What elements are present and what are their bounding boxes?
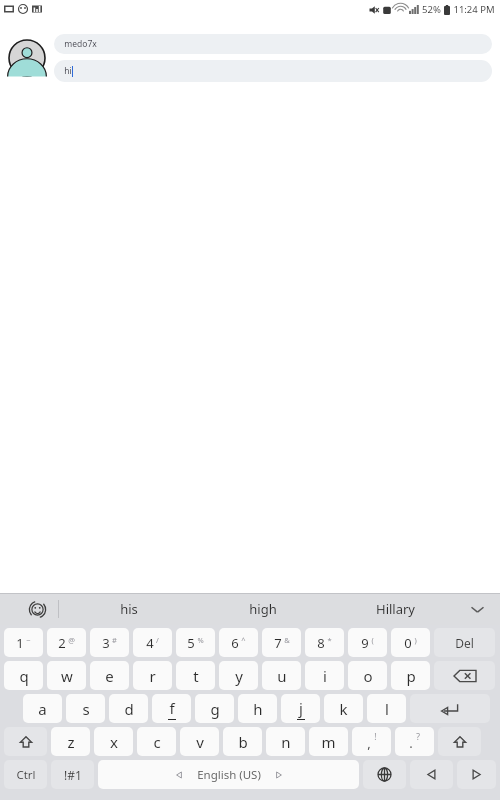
button[interactable]: his <box>62 593 196 625</box>
button[interactable]: 0 <box>391 628 430 657</box>
staticText: e <box>105 666 114 686</box>
staticText: ! <box>374 731 377 743</box>
staticText: l <box>385 699 389 719</box>
button[interactable]: z <box>51 727 90 756</box>
staticText: p <box>406 666 416 686</box>
button[interactable]: , <box>352 727 391 756</box>
button[interactable]: 5 <box>176 628 215 657</box>
button[interactable]: 9 <box>348 628 387 657</box>
button[interactable]: Hide keyboard <box>462 594 492 624</box>
staticText: i <box>323 666 327 686</box>
staticText: h <box>253 699 263 719</box>
button[interactable]: w <box>47 661 86 690</box>
button[interactable]: 1 <box>4 628 43 657</box>
button[interactable]: Change language <box>363 760 406 789</box>
staticText: 3 <box>102 634 110 652</box>
staticText: 2 <box>58 634 66 652</box>
staticText: b <box>238 732 248 752</box>
button[interactable]: hi <box>54 60 492 82</box>
staticText: x <box>110 732 118 752</box>
staticText: 11:24 PM <box>453 3 495 16</box>
button[interactable]: Hillary <box>329 593 462 625</box>
staticText: f <box>169 698 175 718</box>
staticText: z <box>67 732 75 752</box>
button[interactable]: Emoji <box>22 594 52 624</box>
button[interactable]: 2 <box>47 628 86 657</box>
button[interactable]: Shift <box>4 727 47 756</box>
staticText: u <box>277 666 287 686</box>
staticText: hi <box>64 65 72 77</box>
button[interactable]: f <box>152 694 191 723</box>
staticText: c <box>153 732 161 752</box>
button[interactable]: !#1 <box>51 760 94 789</box>
staticText: , <box>367 734 371 752</box>
button[interactable]: Ctrl <box>4 760 47 789</box>
staticText: g <box>210 699 220 719</box>
button[interactable]: medo7x <box>54 34 492 54</box>
button[interactable]: u <box>262 661 301 690</box>
button[interactable]: x <box>94 727 133 756</box>
staticText: 0 <box>404 634 412 652</box>
button[interactable]: c <box>137 727 176 756</box>
staticText: r <box>149 666 156 686</box>
button[interactable]: v <box>180 727 219 756</box>
button[interactable]: j <box>281 694 320 723</box>
button[interactable]: b <box>223 727 262 756</box>
staticText: ? <box>416 731 420 743</box>
staticText: j <box>299 698 303 718</box>
staticText: a <box>38 699 47 719</box>
button[interactable]: i <box>305 661 344 690</box>
button[interactable]: k <box>324 694 363 723</box>
button[interactable]: 3 <box>90 628 129 657</box>
staticText: Del <box>455 635 474 651</box>
button[interactable]: high <box>196 593 329 625</box>
button[interactable]: 7 <box>262 628 301 657</box>
staticText: Ctrl <box>16 767 36 783</box>
button[interactable]: Shift <box>438 727 481 756</box>
staticText: d <box>124 699 134 719</box>
button[interactable]: Move cursor right <box>457 760 496 789</box>
staticText: s <box>82 699 90 719</box>
staticText: ( <box>371 635 374 645</box>
staticText: 52% <box>422 3 441 16</box>
button[interactable]: Move cursor left <box>410 760 453 789</box>
staticText: 8 <box>317 634 325 652</box>
button[interactable]: g <box>195 694 234 723</box>
button[interactable]: m <box>309 727 348 756</box>
button[interactable]: English (US) <box>98 760 359 789</box>
button[interactable]: s <box>66 694 105 723</box>
button[interactable]: 8 <box>305 628 344 657</box>
button[interactable]: p <box>391 661 430 690</box>
button[interactable]: y <box>219 661 258 690</box>
button[interactable]: . <box>395 727 434 756</box>
button[interactable]: 4 <box>133 628 172 657</box>
staticText: 4 <box>146 634 154 652</box>
staticText: @ <box>68 635 75 645</box>
staticText: 7 <box>274 634 282 652</box>
staticText: # <box>112 635 117 645</box>
staticText: ) <box>414 635 417 645</box>
button[interactable]: 6 <box>219 628 258 657</box>
button[interactable]: d <box>109 694 148 723</box>
button[interactable]: a <box>23 694 62 723</box>
button[interactable]: n <box>266 727 305 756</box>
staticText: w <box>61 666 73 686</box>
staticText: n <box>281 732 291 752</box>
button[interactable]: l <box>367 694 406 723</box>
staticText: . <box>409 734 413 752</box>
staticText: 6 <box>231 634 239 652</box>
button[interactable]: Backspace <box>434 661 495 690</box>
staticText: ~ <box>26 635 31 645</box>
button[interactable]: q <box>4 661 43 690</box>
button[interactable]: o <box>348 661 387 690</box>
button[interactable]: h <box>238 694 277 723</box>
button[interactable]: r <box>133 661 172 690</box>
staticText: v <box>196 732 204 752</box>
button[interactable]: Del <box>434 628 495 657</box>
staticText: high <box>249 600 277 618</box>
button[interactable]: e <box>90 661 129 690</box>
button[interactable]: t <box>176 661 215 690</box>
button[interactable]: Enter <box>410 694 490 723</box>
staticText: % <box>197 635 204 645</box>
staticText: m <box>321 732 336 752</box>
